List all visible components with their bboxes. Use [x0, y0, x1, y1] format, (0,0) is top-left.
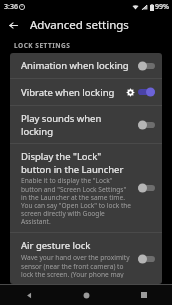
button[interactable]: Navigate up [4, 16, 22, 34]
staticText: 3:36 [4, 2, 18, 12]
staticText: Animation when locking [21, 59, 129, 72]
button[interactable]: Play sounds when locking [10, 106, 162, 143]
staticText: Air gesture lock [21, 239, 91, 252]
staticText: LOCK SETTINGS [14, 41, 71, 50]
staticText: Enable it to display the "Lock" button a… [21, 176, 133, 226]
button[interactable]: Recent apps [115, 285, 172, 305]
button[interactable]: Air gesture lock [10, 233, 162, 284]
button[interactable]: Home [58, 285, 115, 305]
button[interactable]: Display the "Lock" button in the Launche… [10, 144, 162, 232]
staticText: Play sounds when locking [21, 112, 133, 137]
staticText: Display the "Lock" button in the Launche… [21, 150, 133, 175]
button[interactable]: Animation when locking [10, 53, 162, 78]
staticText: 99% [155, 2, 169, 12]
button[interactable]: Back [0, 285, 58, 305]
button[interactable]: Vibrate when locking [10, 79, 162, 105]
staticText: Vibrate when locking [21, 86, 115, 99]
staticText: Wave your hand over the proximity sensor… [21, 253, 133, 278]
button[interactable]: Vibration settings [123, 85, 137, 99]
staticText: Advanced settings [30, 17, 129, 33]
